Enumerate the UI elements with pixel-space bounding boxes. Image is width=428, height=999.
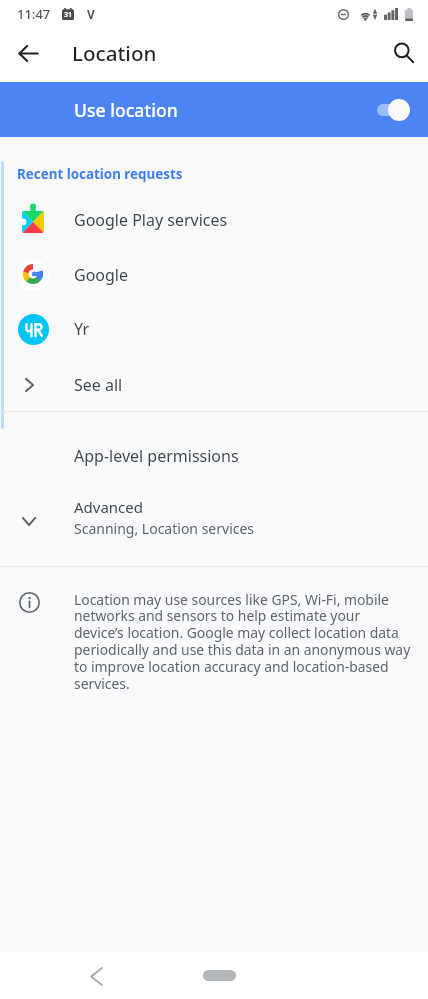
staticText: V [87, 6, 95, 22]
staticText: App-level permissions [74, 445, 239, 467]
button[interactable]: Search [382, 31, 426, 75]
staticText: Google [74, 264, 129, 286]
staticText: Yr [74, 318, 90, 340]
button[interactable]: Use location [0, 82, 428, 137]
button[interactable]: Back [78, 958, 114, 994]
staticText: Location may use sources like GPS, Wi-Fi… [74, 590, 412, 693]
staticText: 31 [64, 10, 73, 20]
button[interactable]: Google [0, 248, 428, 302]
staticText: Google Play services [74, 209, 228, 231]
button[interactable]: App-level permissions [0, 429, 428, 483]
button[interactable]: Advanced [0, 486, 428, 548]
staticText: Advanced [74, 497, 144, 517]
button[interactable]: Home [203, 970, 236, 981]
button[interactable]: Google Play services [0, 193, 428, 247]
staticText: Location [72, 39, 157, 67]
button[interactable]: See all [0, 358, 428, 412]
staticText: 11:47 [17, 5, 51, 23]
staticText: See all [74, 374, 123, 396]
button[interactable]: Back [6, 31, 50, 75]
staticText: Recent location requests [17, 165, 183, 183]
button[interactable]: Yr [0, 302, 428, 356]
staticText: Scanning, Location services [74, 519, 255, 538]
staticText: Use location [74, 98, 178, 122]
